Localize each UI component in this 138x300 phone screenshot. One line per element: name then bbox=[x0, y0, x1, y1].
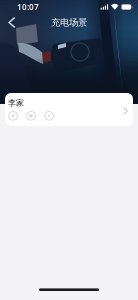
staticText: 充电场景 bbox=[51, 17, 87, 28]
staticText: 10:07 bbox=[17, 2, 39, 12]
staticText: 李家 bbox=[8, 98, 24, 108]
button[interactable]: Back bbox=[0, 12, 24, 33]
button[interactable]: 李家 bbox=[5, 93, 133, 126]
